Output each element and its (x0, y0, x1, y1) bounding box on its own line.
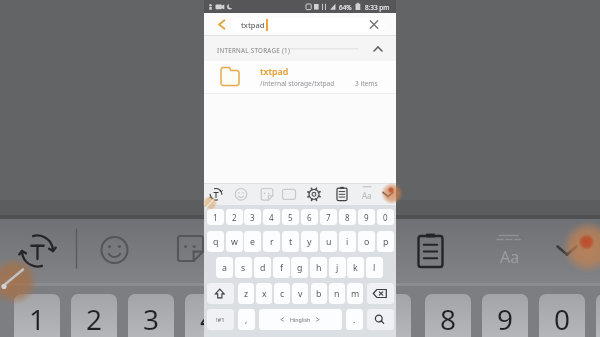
staticText: c (280, 288, 285, 300)
button[interactable]: b (311, 283, 327, 304)
button[interactable]: s (235, 257, 252, 278)
staticText: 8:33 pm (365, 3, 390, 12)
button[interactable] (356, 184, 380, 205)
button[interactable]: . (346, 309, 363, 330)
button[interactable] (367, 309, 394, 330)
button[interactable]: d (254, 257, 271, 278)
button[interactable]: r (263, 231, 280, 252)
button[interactable] (211, 14, 232, 34)
button[interactable]: 7 (365, 294, 411, 337)
staticText: g (297, 262, 303, 274)
staticText: k (353, 262, 358, 274)
button[interactable]: 0 (539, 294, 585, 337)
staticText: m (351, 288, 360, 300)
staticText: q (213, 236, 219, 248)
button[interactable] (306, 184, 330, 205)
button[interactable]: 8 (425, 294, 471, 337)
button[interactable]: h (310, 257, 327, 278)
button[interactable]: w (226, 231, 243, 252)
button[interactable] (231, 184, 255, 205)
staticText: 2 (232, 212, 237, 223)
staticText: INTERNAL STORAGE (1) (217, 46, 291, 54)
staticText: o (364, 236, 370, 248)
staticText: p (383, 236, 389, 248)
button[interactable]: 3 (128, 294, 174, 337)
staticText: z (244, 288, 249, 300)
button[interactable]: 4 (185, 294, 231, 337)
button[interactable]: 1 (207, 209, 224, 225)
button[interactable] (231, 18, 385, 32)
button[interactable]: c (274, 283, 290, 304)
button[interactable]: 7 (320, 209, 337, 225)
button[interactable]: u (320, 231, 337, 252)
button[interactable]: e (244, 231, 261, 252)
button[interactable]: i (339, 231, 356, 252)
staticText: x (262, 288, 267, 300)
staticText: 9 (497, 300, 514, 337)
staticText: 3 (250, 212, 255, 223)
button[interactable]: l (366, 257, 383, 278)
button[interactable]: 4 (263, 209, 280, 225)
button[interactable]: v (292, 283, 308, 304)
button[interactable] (204, 61, 396, 93)
button[interactable] (256, 184, 280, 205)
button[interactable] (367, 283, 394, 304)
staticText: , (245, 314, 248, 326)
button[interactable]: o (358, 231, 375, 252)
button[interactable]: 2 (226, 209, 243, 225)
staticText: txtpad (260, 66, 289, 77)
staticText: 7 (326, 212, 331, 223)
button[interactable]: g (291, 257, 308, 278)
staticText: h (316, 262, 322, 274)
button[interactable] (206, 184, 230, 205)
button[interactable]: m (347, 283, 363, 304)
button[interactable]: p (377, 231, 394, 252)
button[interactable] (365, 15, 384, 34)
button[interactable]: q (207, 231, 224, 252)
button[interactable]: k (347, 257, 364, 278)
staticText: Aa (500, 246, 520, 266)
button[interactable]: z (238, 283, 254, 304)
staticText: 8 (345, 212, 350, 223)
button[interactable] (259, 309, 342, 330)
staticText: 3 (143, 300, 160, 337)
button[interactable]: !#1 (207, 309, 234, 330)
button[interactable]: 5 (282, 209, 299, 225)
button[interactable]: 9 (482, 294, 528, 337)
button[interactable]: t (282, 231, 299, 252)
button[interactable]: 3 (244, 209, 261, 225)
button[interactable]: n (329, 283, 345, 304)
staticText: n (334, 288, 340, 300)
button[interactable]: , (238, 309, 255, 330)
button[interactable]: f (273, 257, 290, 278)
staticText: 9 (364, 212, 369, 223)
staticText: f (280, 262, 284, 274)
button[interactable] (331, 184, 355, 205)
staticText: Hinglish (290, 316, 311, 323)
staticText: l (373, 262, 376, 274)
staticText: 6 (307, 212, 312, 223)
button[interactable]: x (256, 283, 272, 304)
button[interactable] (207, 283, 234, 304)
button[interactable] (596, 294, 600, 337)
staticText: r (270, 236, 274, 248)
button[interactable]: 8 (339, 209, 356, 225)
button[interactable]: 2 (71, 294, 117, 337)
button[interactable]: a (216, 257, 233, 278)
button[interactable]: 1 (14, 294, 60, 337)
staticText: !#1 (216, 316, 225, 324)
button[interactable] (281, 184, 305, 205)
staticText: y (307, 236, 312, 248)
button[interactable]: Aa (360, 189, 374, 201)
staticText: d (260, 262, 266, 274)
button[interactable] (368, 41, 388, 58)
button[interactable]: 0 (377, 209, 394, 225)
button[interactable]: 9 (358, 209, 375, 225)
staticText: 0 (383, 212, 388, 223)
staticText: 8 (440, 300, 457, 337)
staticText: txtpad (241, 20, 265, 30)
staticText: b (316, 288, 322, 300)
button[interactable]: 6 (301, 209, 318, 225)
button[interactable]: j (329, 257, 346, 278)
button[interactable]: y (301, 231, 318, 252)
